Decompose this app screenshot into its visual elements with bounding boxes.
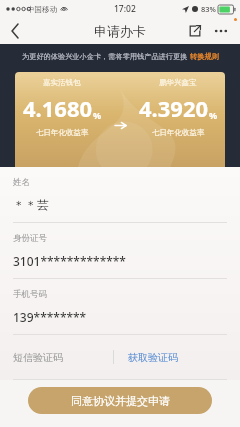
- button[interactable]: 转换规则: [190, 52, 219, 61]
- staticText: 83%: [201, 4, 216, 14]
- staticText: 为更好的体验兴业小金卡，需将零用钱产品进行更换: [22, 52, 188, 61]
- staticText: 139********: [13, 309, 87, 325]
- staticText: 七日年化收益率: [36, 128, 89, 137]
- staticText: 身份证号: [13, 233, 47, 244]
- button[interactable]: Back: [0, 18, 30, 44]
- staticText: %: [93, 109, 102, 121]
- staticText: 获取验证码: [128, 351, 178, 364]
- staticText: 4.3920: [139, 93, 209, 123]
- button[interactable]: 获取验证码: [114, 335, 240, 379]
- staticText: %: [209, 109, 218, 121]
- staticText: 嘉实活钱包: [43, 78, 81, 87]
- staticText: 同意协议并提交申请: [71, 394, 170, 408]
- button[interactable]: 同意协议并提交申请: [28, 387, 212, 414]
- button[interactable]: More options: [208, 18, 234, 44]
- staticText: 17:02: [114, 3, 136, 15]
- button[interactable]: Share: [182, 18, 208, 44]
- staticText: 中国移动: [27, 5, 57, 14]
- staticText: 手机号码: [13, 289, 47, 300]
- staticText: 姓名: [13, 177, 30, 188]
- staticText: 4.1680: [23, 93, 93, 123]
- staticText: 鹏华兴鑫宝: [159, 78, 197, 87]
- staticText: 3101*************: [13, 253, 126, 269]
- staticText: ＊＊芸: [13, 197, 49, 212]
- staticText: 短信验证码: [13, 351, 113, 364]
- staticText: 申请办卡: [94, 23, 146, 39]
- staticText: 七日年化收益率: [152, 128, 205, 137]
- staticText: 转换规则: [190, 52, 219, 61]
